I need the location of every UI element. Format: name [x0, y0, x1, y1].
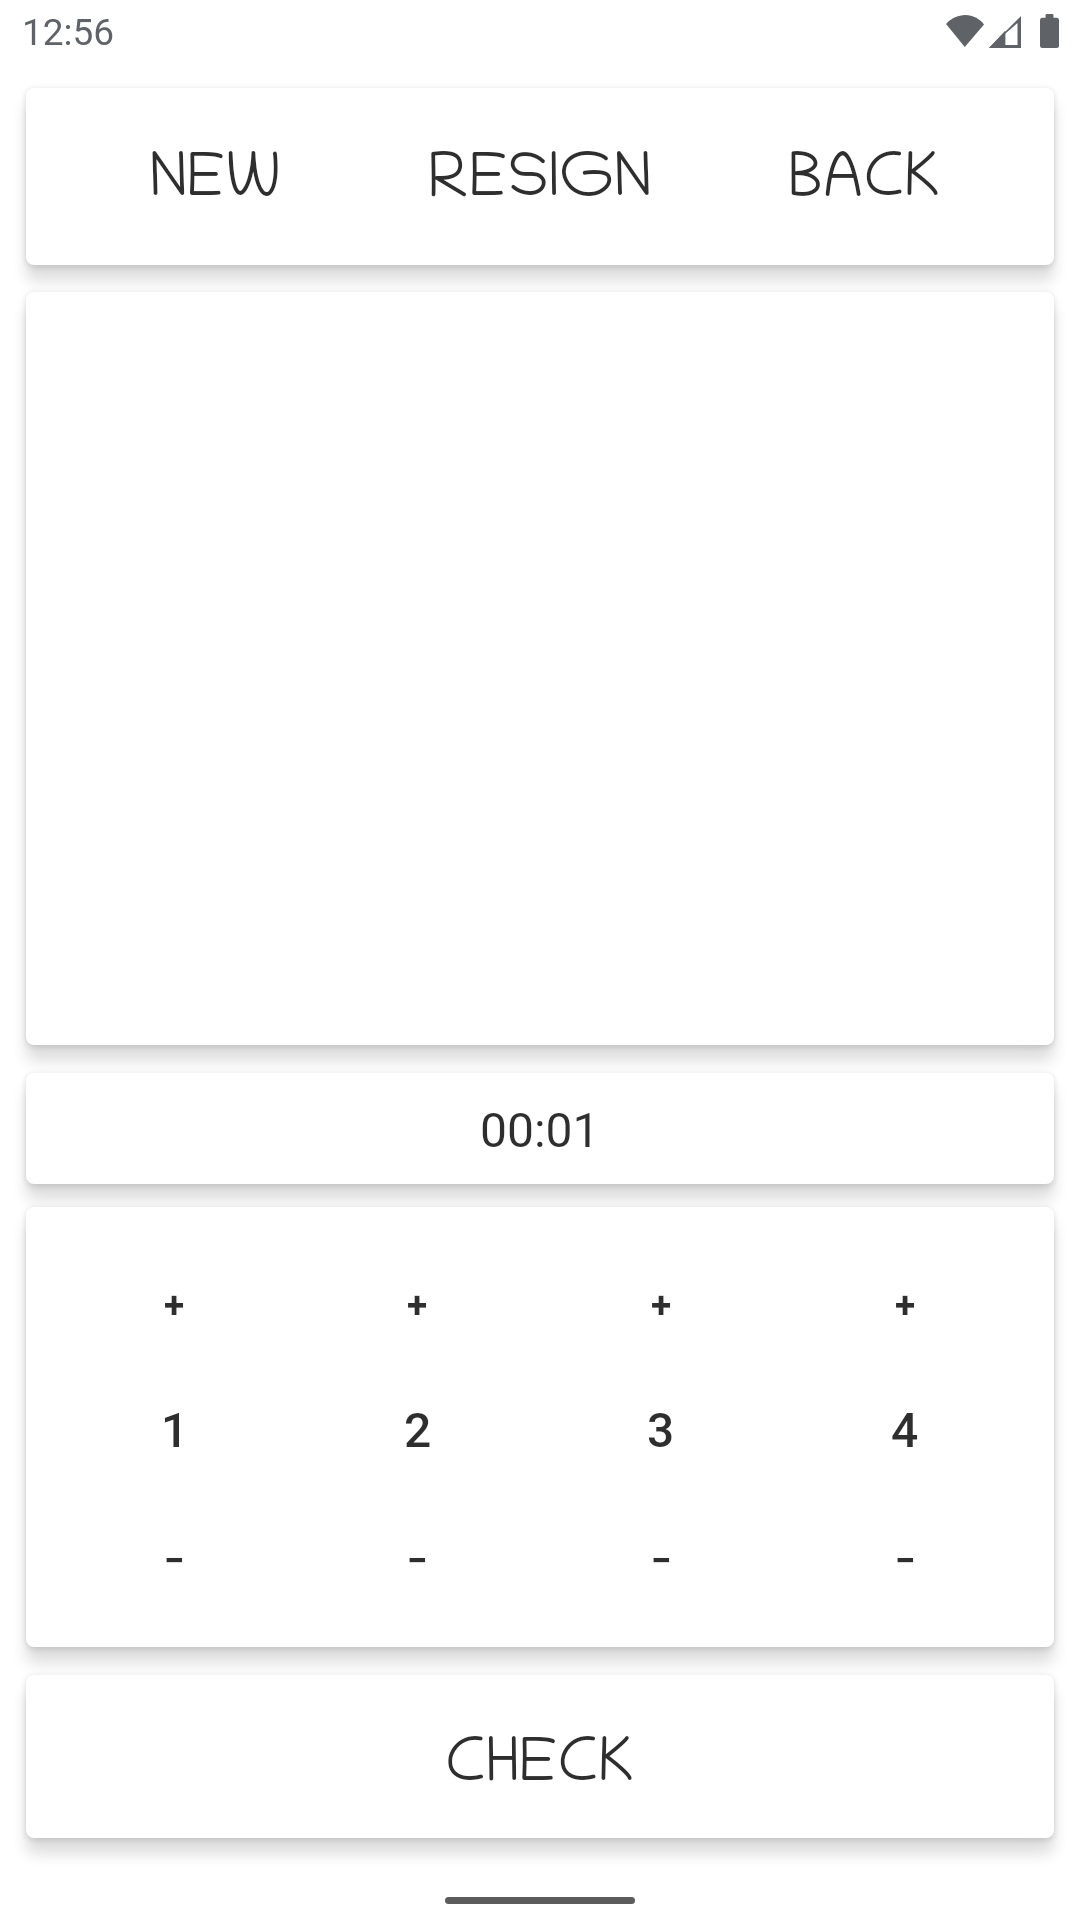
staticText: 00:01: [480, 1102, 600, 1158]
button[interactable]: Increase digit 1: [53, 1207, 296, 1353]
staticText: 3: [647, 1402, 675, 1458]
staticText: −: [164, 1539, 185, 1582]
staticText: 2: [404, 1402, 432, 1458]
staticText: +: [407, 1284, 428, 1327]
button[interactable]: Decrease digit 1: [53, 1500, 296, 1647]
staticText: CHECK: [445, 1735, 635, 1802]
button[interactable]: Decrease digit 3: [539, 1500, 783, 1647]
button[interactable]: RESIGN: [377, 88, 702, 265]
button[interactable]: Decrease digit 4: [783, 1500, 1027, 1647]
staticText: −: [651, 1539, 672, 1582]
staticText: 12:56: [22, 11, 115, 54]
staticText: NEW: [149, 150, 281, 217]
other: Home: [445, 1897, 635, 1904]
staticText: BACK: [788, 150, 941, 217]
button[interactable]: NEW: [53, 88, 377, 265]
staticText: 4: [891, 1402, 919, 1458]
staticText: 1: [161, 1402, 189, 1458]
staticText: +: [164, 1284, 185, 1327]
button[interactable]: BACK: [702, 88, 1027, 265]
button[interactable]: Increase digit 2: [296, 1207, 539, 1353]
staticText: +: [651, 1284, 672, 1327]
staticText: −: [895, 1539, 916, 1582]
button[interactable]: Decrease digit 2: [296, 1500, 539, 1647]
staticText: RESIGN: [428, 150, 652, 217]
button[interactable]: Increase digit 3: [539, 1207, 783, 1353]
staticText: −: [407, 1539, 428, 1582]
button[interactable]: Increase digit 4: [783, 1207, 1027, 1353]
button[interactable]: CHECK: [26, 1675, 1054, 1838]
staticText: +: [895, 1284, 916, 1327]
